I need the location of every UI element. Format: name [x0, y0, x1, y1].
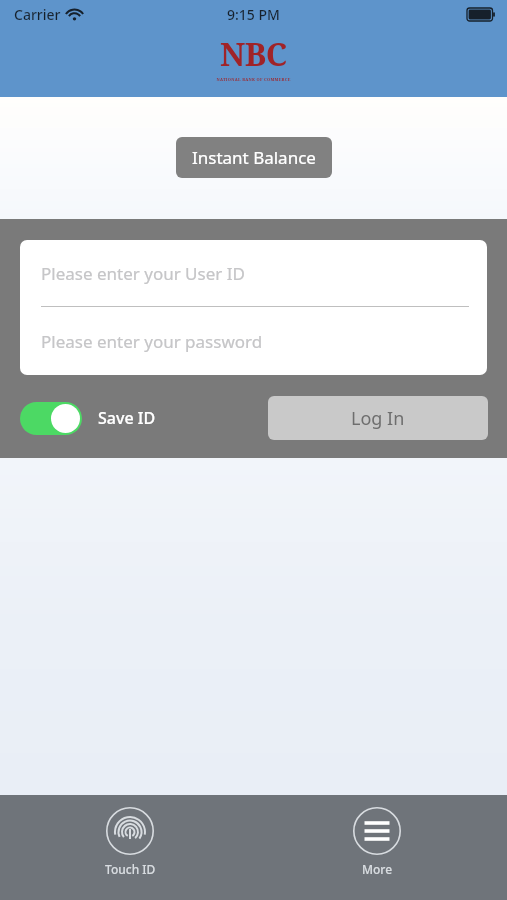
staticText: Save ID — [98, 407, 156, 429]
button[interactable]: Touch ID — [81, 803, 179, 881]
button[interactable]: Save ID toggle, on — [20, 402, 82, 435]
staticText: Please enter your password — [41, 330, 263, 353]
staticText: Log In — [351, 406, 405, 431]
staticText: Touch ID — [105, 861, 156, 877]
staticText: 9:15 PM — [227, 5, 280, 24]
staticText: More — [362, 861, 393, 877]
staticText: NBC — [220, 32, 287, 76]
button[interactable]: Please enter your password — [20, 307, 487, 375]
other: NBC National Bank of Commerce logo — [216, 32, 291, 82]
button[interactable]: Log In — [268, 396, 488, 440]
staticText: NATIONAL BANK OF COMMERCE — [216, 77, 291, 82]
staticText: Instant Balance — [192, 146, 316, 169]
staticText: Carrier — [14, 5, 61, 24]
button[interactable]: Please enter your User ID — [20, 240, 487, 306]
button[interactable]: Instant Balance — [176, 137, 332, 178]
staticText: Please enter your User ID — [41, 262, 245, 285]
button[interactable]: More — [328, 803, 426, 881]
